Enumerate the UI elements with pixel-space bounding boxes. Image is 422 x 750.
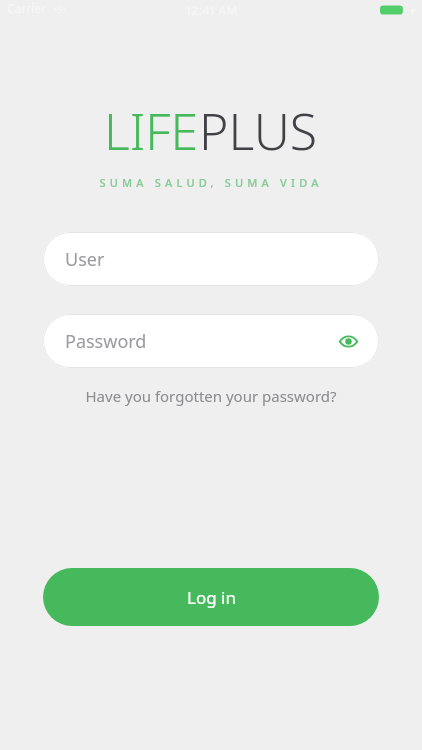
button[interactable]: User <box>43 232 379 286</box>
staticText: LIFE <box>104 97 199 165</box>
button[interactable]: Password <box>43 314 379 368</box>
staticText: PLUS <box>199 97 318 165</box>
staticText: Have you forgotten your password? <box>85 386 337 406</box>
button[interactable]: Log in <box>43 568 379 626</box>
button[interactable]: Show password <box>331 324 365 358</box>
staticText: User <box>65 247 105 272</box>
staticText: Password <box>65 329 147 354</box>
button[interactable]: Have you forgotten your password? <box>0 381 422 411</box>
staticText: SUMA SALUD, SUMA VIDA <box>99 175 323 190</box>
staticText: Log in <box>187 586 236 609</box>
